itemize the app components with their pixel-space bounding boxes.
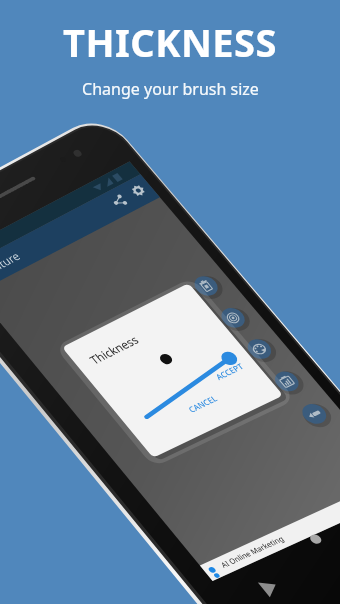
staticText: THICKNESS: [63, 16, 277, 68]
staticText: Change your brush size: [82, 78, 259, 100]
other: Phone mockup showing thickness dialog: [0, 0, 340, 604]
